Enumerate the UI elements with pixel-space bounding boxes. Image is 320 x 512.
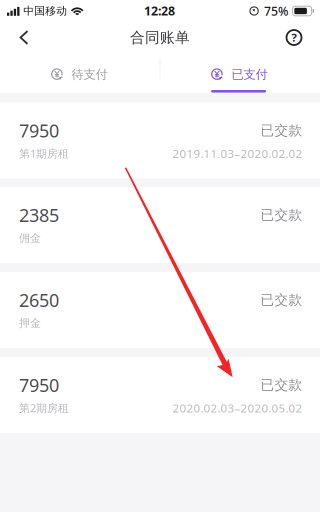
staticText: 合同账单	[130, 28, 190, 47]
staticText: 第1期房租	[19, 146, 69, 161]
button[interactable]: 7950	[0, 102, 320, 178]
staticText: 待支付	[71, 67, 107, 82]
staticText: 押金	[19, 316, 41, 330]
button[interactable]: Help	[276, 22, 312, 52]
button[interactable]: 已支付	[160, 53, 320, 93]
button[interactable]: Back	[6, 22, 42, 52]
staticText: 2020.02.03–2020.05.02	[172, 400, 302, 416]
staticText: 已交款	[260, 206, 302, 223]
staticText: 中国移动	[23, 4, 67, 18]
button[interactable]: 待支付	[0, 53, 160, 93]
staticText: 已交款	[260, 376, 302, 393]
staticText: 2019.11.03–2020.02.02	[172, 146, 302, 161]
staticText: 已交款	[260, 122, 302, 139]
staticText: 75%	[264, 3, 288, 19]
staticText: ?	[291, 30, 296, 45]
button[interactable]: 2650	[0, 272, 320, 348]
staticText: 已支付	[231, 67, 267, 82]
staticText: 7950	[19, 118, 59, 143]
button[interactable]: 2385	[0, 187, 320, 263]
staticText: 已交款	[260, 291, 302, 308]
staticText: 佣金	[19, 231, 41, 245]
staticText: 2385	[19, 203, 59, 227]
staticText: 第2期房租	[19, 401, 69, 415]
staticText: 7950	[19, 373, 59, 397]
button[interactable]: 7950	[0, 357, 320, 433]
staticText: 2650	[19, 288, 59, 312]
staticText: 12:28	[144, 2, 175, 19]
